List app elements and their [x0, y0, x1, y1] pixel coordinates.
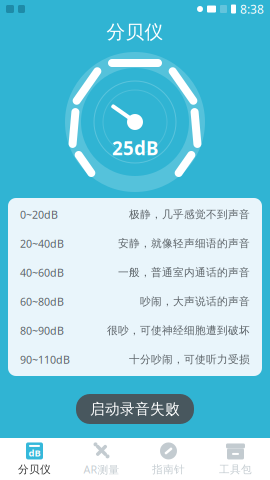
staticText: 90~110dB [20, 352, 70, 367]
staticText: 25dB [112, 136, 158, 160]
staticText: 0~20dB [20, 207, 58, 222]
staticText: 分贝仪 [106, 20, 163, 43]
staticText: 一般，普通室内通话的声音 [118, 266, 250, 279]
staticText: 启动录音失败 [90, 400, 180, 418]
staticText: 60~80dB [20, 294, 64, 309]
staticText: 安静，就像轻声细语的声音 [118, 237, 250, 250]
staticText: 8:38 [240, 1, 264, 17]
staticText: 指南针 [152, 463, 185, 476]
button[interactable]: dB [1, 438, 68, 480]
staticText: AR测量 [83, 462, 119, 477]
staticText: 十分吵闹，可使听力受损 [129, 353, 250, 366]
staticText: 很吵，可使神经细胞遭到破坏 [107, 324, 250, 337]
button[interactable]: 指南针 [135, 438, 202, 480]
staticText: 40~60dB [20, 265, 64, 280]
staticText: 吵闹，大声说话的声音 [140, 295, 250, 308]
staticText: 分贝仪 [18, 463, 51, 476]
staticText: dB [28, 447, 40, 459]
staticText: 20~40dB [20, 236, 64, 251]
staticText: 工具包 [219, 463, 252, 476]
staticText: 极静，几乎感觉不到声音 [129, 208, 250, 221]
button[interactable]: AR测量 [68, 438, 135, 480]
button[interactable]: 工具包 [202, 438, 269, 480]
staticText: 80~90dB [20, 323, 64, 338]
